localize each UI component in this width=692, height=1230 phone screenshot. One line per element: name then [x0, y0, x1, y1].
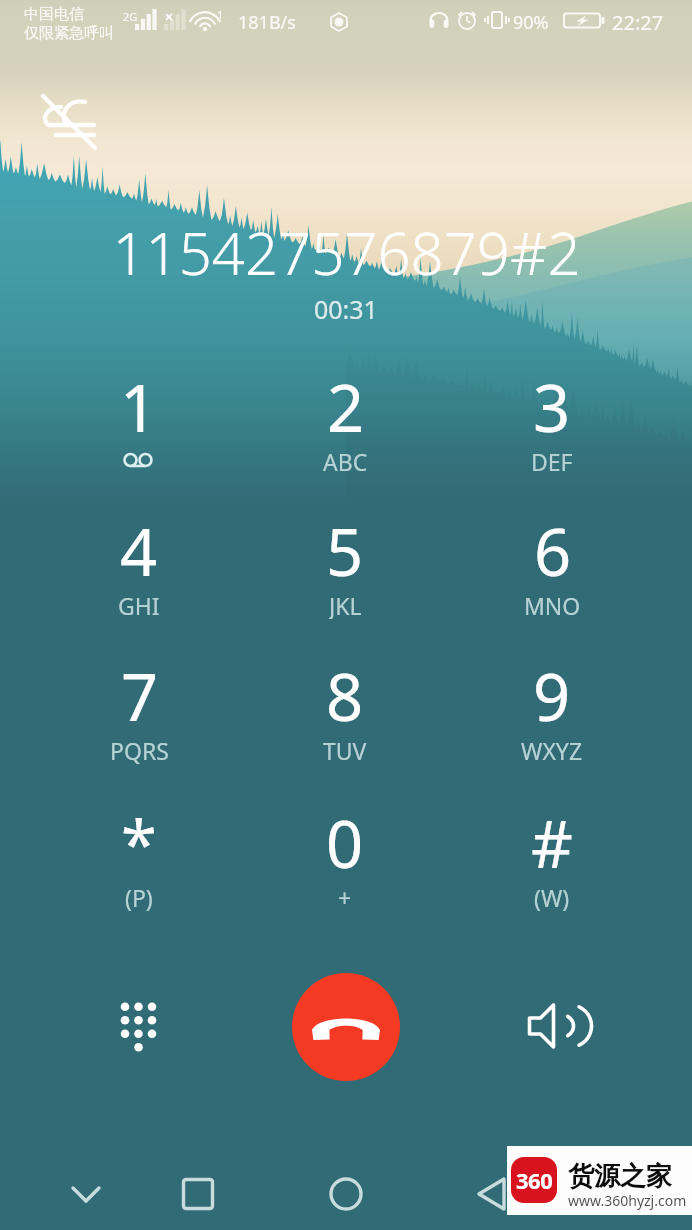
- button[interactable]: 6: [482, 507, 622, 625]
- staticText: 7: [121, 652, 159, 741]
- button[interactable]: 2: [275, 363, 415, 481]
- button[interactable]: Recents: [162, 1158, 234, 1230]
- staticText: 8: [326, 652, 364, 741]
- staticText: JKL: [329, 590, 362, 619]
- staticText: 1: [217, 7, 224, 22]
- staticText: MNO: [524, 590, 581, 619]
- staticText: 3: [533, 363, 571, 452]
- staticText: 货源之家: [568, 1160, 672, 1193]
- staticText: 2G: [123, 9, 138, 24]
- staticText: 00:31: [314, 292, 378, 326]
- staticText: WXYZ: [521, 735, 583, 764]
- staticText: 0: [326, 799, 364, 888]
- button[interactable]: 1: [69, 363, 209, 481]
- staticText: 2: [327, 363, 365, 452]
- staticText: (P): [125, 882, 153, 911]
- staticText: 6: [534, 507, 572, 596]
- button[interactable]: Hide: [50, 1158, 122, 1230]
- button[interactable]: 8: [275, 652, 415, 770]
- staticText: (W): [534, 882, 570, 911]
- staticText: 9: [533, 652, 571, 741]
- staticText: *: [121, 799, 157, 888]
- button[interactable]: Speaker: [520, 993, 586, 1059]
- staticText: TUV: [323, 735, 367, 764]
- staticText: 仅限紧急呼叫: [24, 24, 114, 43]
- button[interactable]: *: [69, 799, 209, 917]
- staticText: 181B/s: [238, 10, 296, 35]
- button[interactable]: Home: [310, 1158, 382, 1230]
- staticText: 22:27: [612, 9, 664, 36]
- staticText: #: [531, 799, 573, 888]
- staticText: 1: [120, 363, 158, 452]
- button[interactable]: Mute: [38, 92, 112, 158]
- button[interactable]: 9: [482, 652, 622, 770]
- staticText: www.360hyzj.com: [568, 1191, 687, 1210]
- staticText: PQRS: [110, 735, 169, 764]
- staticText: ABC: [323, 446, 368, 475]
- button[interactable]: 7: [69, 652, 209, 770]
- staticText: 90%: [513, 10, 549, 35]
- button[interactable]: 5: [275, 507, 415, 625]
- staticText: 4: [120, 507, 158, 596]
- button[interactable]: End call: [292, 973, 400, 1081]
- staticText: 中国电信: [24, 5, 84, 24]
- button[interactable]: 0: [275, 799, 415, 917]
- button[interactable]: Back: [457, 1158, 529, 1230]
- staticText: 5: [326, 507, 364, 596]
- button[interactable]: #: [482, 799, 622, 917]
- staticText: GHI: [118, 590, 160, 619]
- button[interactable]: 4: [69, 507, 209, 625]
- button[interactable]: 3: [482, 363, 622, 481]
- staticText: +: [338, 882, 352, 911]
- staticText: 360: [516, 1165, 553, 1195]
- button[interactable]: Dialpad: [105, 987, 171, 1053]
- staticText: DEF: [531, 446, 573, 475]
- staticText: 115427576879#2: [112, 213, 581, 292]
